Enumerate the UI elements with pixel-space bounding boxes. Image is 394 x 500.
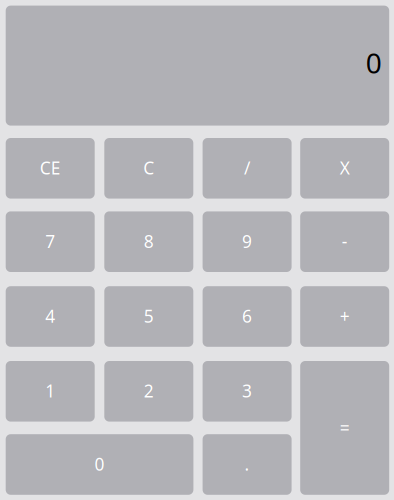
- staticText: 8: [144, 230, 154, 253]
- staticText: -: [342, 230, 348, 253]
- button[interactable]: Clear entry: [6, 138, 95, 199]
- button[interactable]: Minus: [300, 211, 389, 272]
- staticText: 7: [45, 230, 55, 253]
- button[interactable]: 3: [203, 361, 292, 422]
- staticText: 5: [144, 304, 154, 327]
- button[interactable]: Divide: [203, 138, 292, 199]
- staticText: 4: [45, 304, 55, 327]
- staticText: 6: [242, 304, 252, 327]
- button[interactable]: 7: [6, 211, 95, 272]
- button[interactable]: 1: [6, 361, 95, 422]
- button[interactable]: Equals: [300, 361, 389, 495]
- staticText: C: [143, 156, 154, 179]
- staticText: 9: [242, 230, 252, 253]
- staticText: 3: [242, 379, 252, 402]
- button[interactable]: 6: [203, 286, 292, 347]
- button[interactable]: Multiply: [300, 138, 389, 199]
- button[interactable]: Decimal point: [203, 434, 292, 495]
- button[interactable]: 0: [6, 434, 193, 495]
- staticText: 1: [45, 379, 55, 402]
- button[interactable]: 4: [6, 286, 95, 347]
- staticText: +: [340, 304, 350, 327]
- button[interactable]: Clear: [104, 138, 193, 199]
- button[interactable]: 8: [104, 211, 193, 272]
- staticText: 2: [144, 379, 154, 402]
- button[interactable]: 2: [104, 361, 193, 422]
- button[interactable]: 5: [104, 286, 193, 347]
- staticText: 0: [366, 44, 382, 81]
- button[interactable]: 9: [203, 211, 292, 272]
- staticText: .: [245, 452, 250, 475]
- staticText: X: [340, 156, 350, 179]
- staticText: 0: [94, 452, 104, 475]
- staticText: CE: [40, 156, 61, 179]
- staticText: =: [340, 416, 350, 439]
- staticText: /: [244, 156, 250, 179]
- button[interactable]: Plus: [300, 286, 389, 347]
